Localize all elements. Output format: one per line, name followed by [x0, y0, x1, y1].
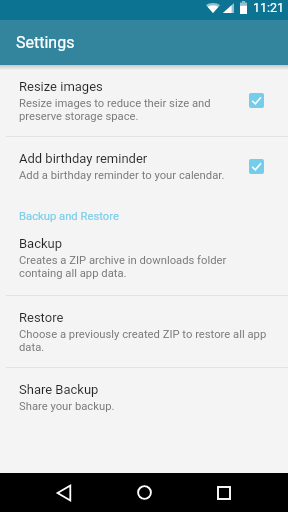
button[interactable]: Back	[44, 473, 84, 512]
staticText: Share your backup.	[19, 400, 115, 413]
staticText: Restore	[19, 310, 64, 325]
staticText: Settings	[16, 33, 75, 52]
button[interactable]: Home	[124, 473, 164, 512]
button[interactable]: Toggle Resize images	[249, 93, 264, 108]
staticText: Resize images	[19, 79, 103, 94]
button[interactable]: Toggle Add birthday reminder	[249, 159, 264, 174]
staticText: Add a birthday reminder to your calendar…	[19, 169, 225, 182]
staticText: Creates a ZIP archive in downloads folde…	[19, 254, 227, 280]
button[interactable]: Resize images	[0, 65, 288, 136]
button[interactable]: Add birthday reminder	[0, 137, 288, 195]
staticText: 11:21	[253, 0, 285, 15]
staticText: Resize images to reduce their size and p…	[19, 97, 211, 123]
button[interactable]: Share Backup	[0, 368, 288, 426]
staticText: Add birthday reminder	[19, 151, 148, 166]
staticText: Backup and Restore	[19, 210, 119, 222]
button[interactable]: Settings	[0, 20, 288, 65]
staticText: Backup	[19, 236, 63, 251]
staticText: Choose a previously created ZIP to resto…	[19, 328, 267, 354]
staticText: Share Backup	[19, 382, 99, 397]
button[interactable]: Restore	[0, 296, 288, 367]
button[interactable]: Recents	[204, 473, 244, 512]
button[interactable]: Backup	[0, 222, 288, 295]
